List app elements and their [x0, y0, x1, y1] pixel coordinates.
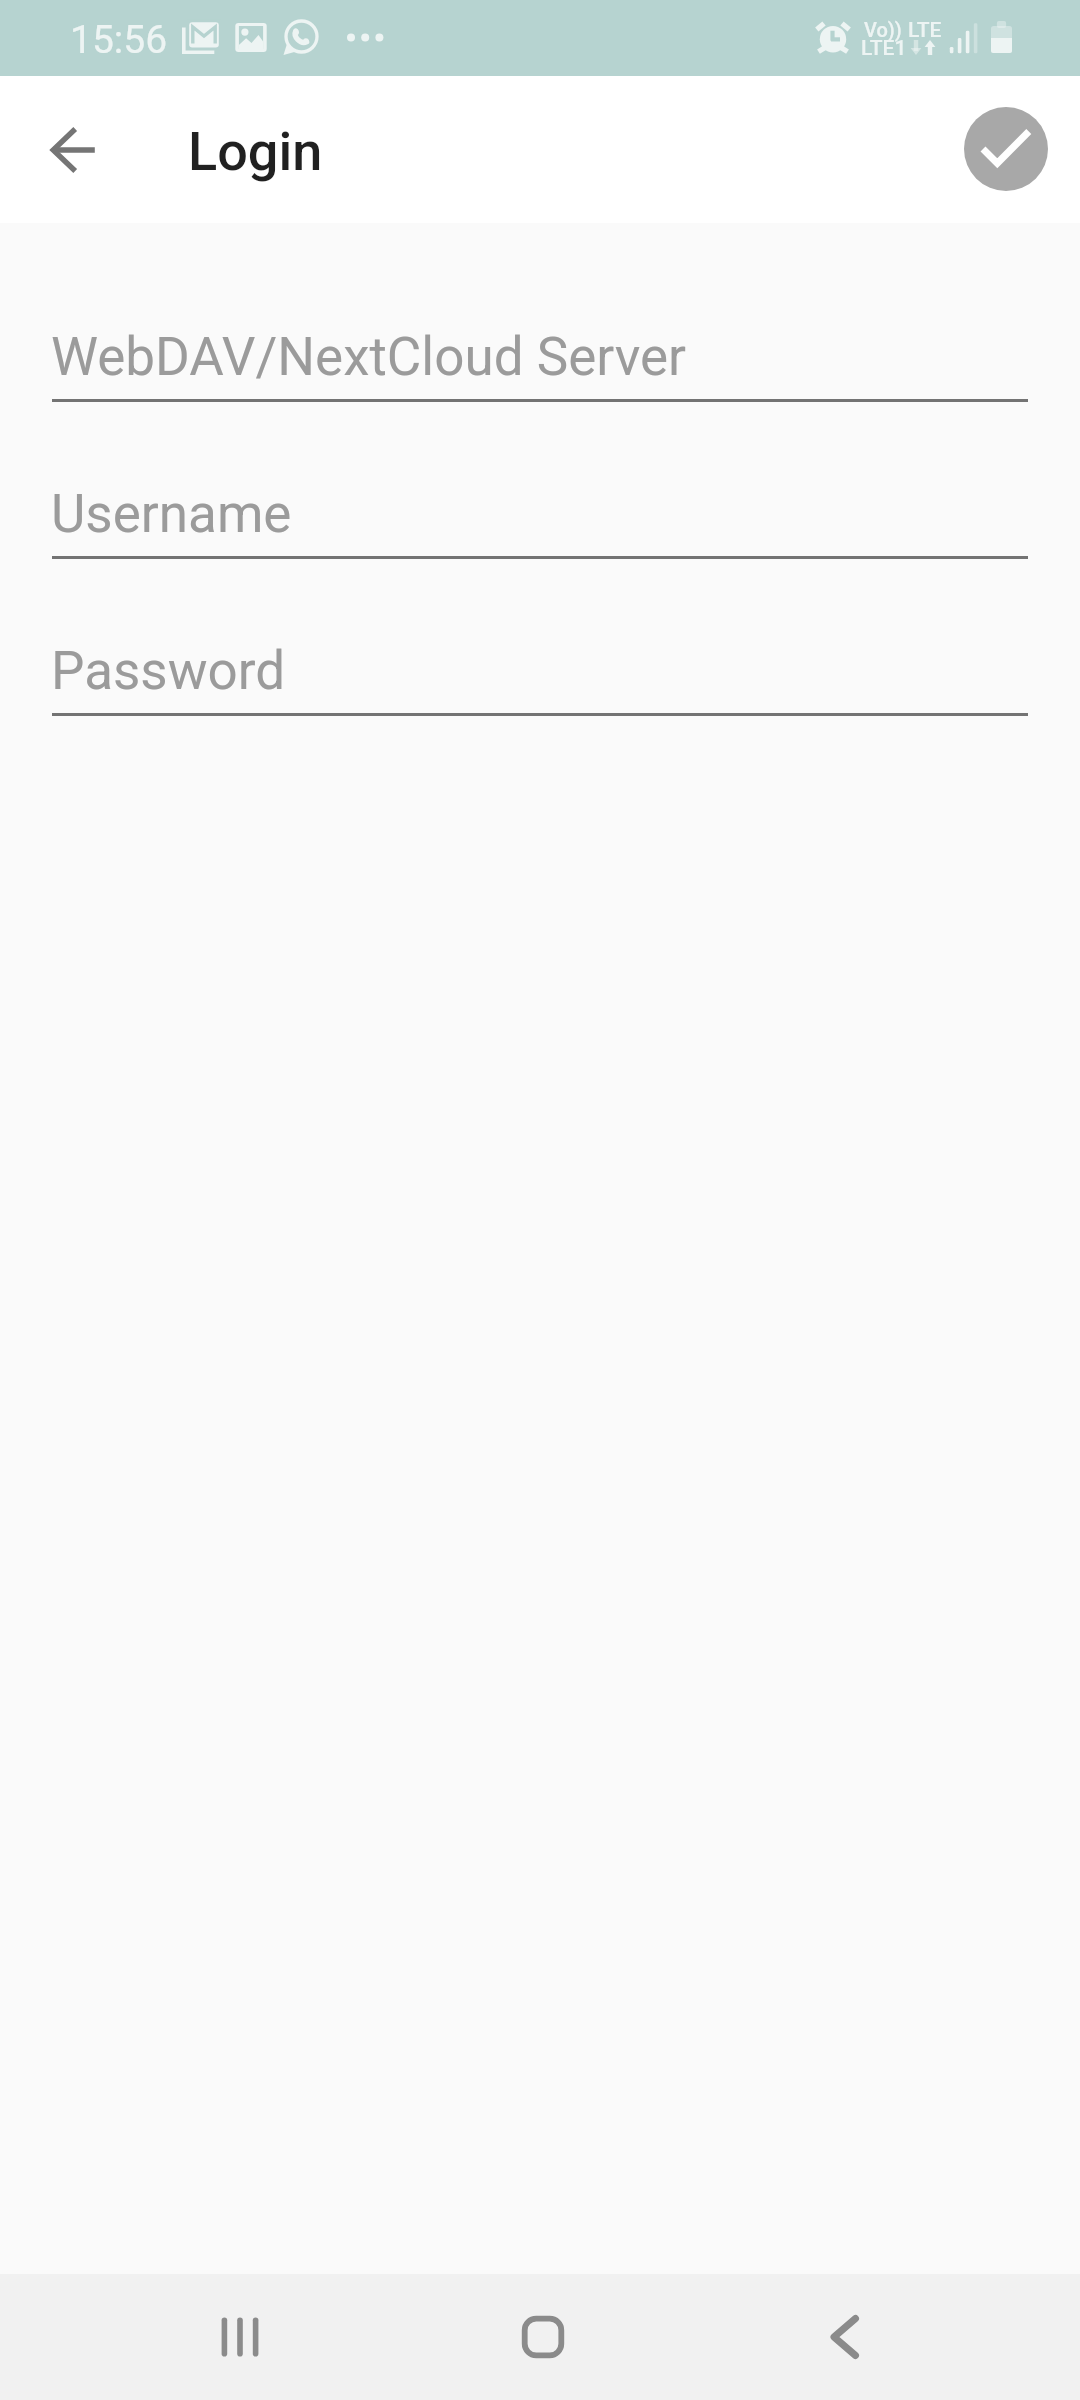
button[interactable]: Username: [0, 483, 1080, 559]
button[interactable]: Password: [0, 640, 1080, 716]
button[interactable]: Confirm login: [964, 107, 1048, 191]
staticText: Username: [51, 483, 292, 545]
staticText: Vo)): [864, 18, 902, 41]
staticText: WebDAV/NextCloud Server: [51, 326, 687, 388]
staticText: Login: [188, 120, 323, 183]
staticText: Password: [51, 640, 286, 702]
button[interactable]: Recent apps: [150, 2274, 330, 2400]
button[interactable]: Home: [453, 2274, 633, 2400]
button[interactable]: Back: [755, 2274, 935, 2400]
staticText: LTE: [908, 18, 942, 43]
staticText: 15:56: [70, 17, 168, 63]
staticText: LTE1: [861, 36, 907, 61]
button[interactable]: WebDAV/NextCloud Server: [0, 326, 1080, 402]
button[interactable]: Navigate up: [30, 106, 118, 194]
